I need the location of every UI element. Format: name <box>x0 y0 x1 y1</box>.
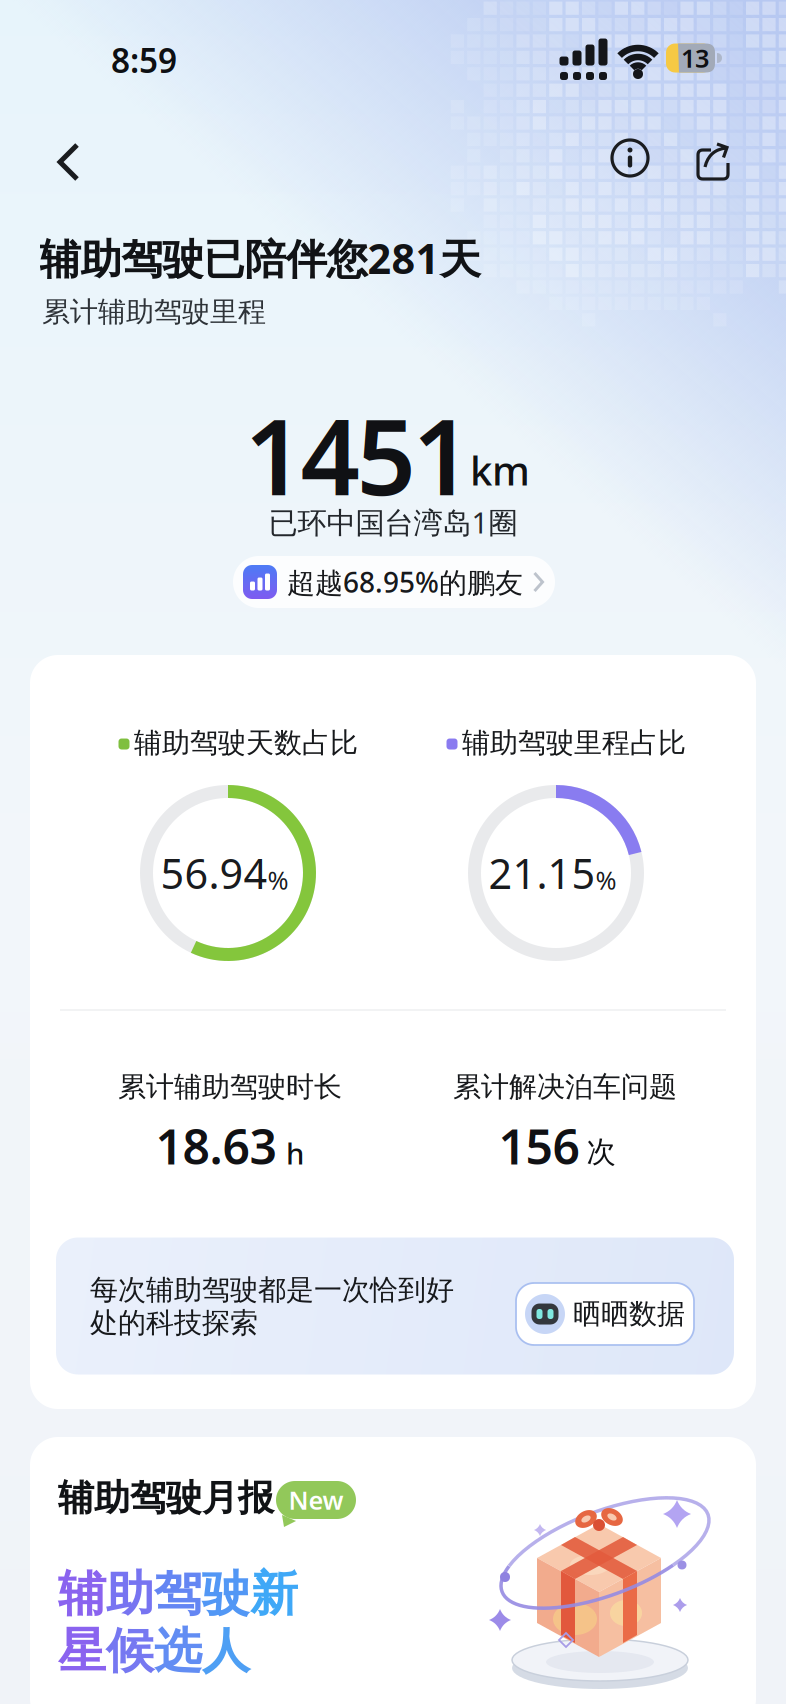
staticText: 辅助驾驶里程占比 <box>462 726 686 760</box>
staticText: 驾 <box>154 1564 202 1623</box>
staticText: 候 <box>106 1621 154 1680</box>
staticText: 21.15 <box>488 846 595 900</box>
staticText: 1451 <box>244 386 471 524</box>
staticText: 56.94 <box>160 846 267 900</box>
staticText: 助 <box>106 1564 154 1623</box>
button[interactable]: 辅助驾驶月报 <box>30 1437 756 1704</box>
button[interactable]: Share <box>691 138 735 182</box>
button[interactable]: Back <box>49 140 93 184</box>
staticText: 辅助驾驶月报 <box>58 1476 274 1520</box>
staticText: 156 <box>498 1114 579 1178</box>
staticText: 晒晒数据 <box>573 1297 685 1331</box>
staticText: h <box>286 1133 304 1172</box>
staticText: 每次辅助驾驶都是一次恰到好 <box>90 1273 454 1307</box>
staticText: 8:59 <box>111 38 177 82</box>
staticText: New <box>288 1483 343 1517</box>
staticText: km <box>470 443 530 496</box>
button[interactable]: Info <box>608 136 652 180</box>
staticText: 星 <box>58 1621 106 1680</box>
staticText: % <box>267 863 288 897</box>
staticText: 13 <box>681 41 709 75</box>
staticText: % <box>595 863 616 897</box>
staticText: 驶 <box>202 1564 250 1623</box>
staticText: 辅助驾驶天数占比 <box>134 726 358 760</box>
button[interactable]: 超越68.95%的鹏友 <box>233 556 555 608</box>
staticText: 已环中国台湾岛1圈 <box>268 502 517 541</box>
staticText: 累计解决泊车问题 <box>453 1070 677 1104</box>
staticText: 处的科技探索 <box>90 1306 258 1340</box>
staticText: 超越68.95%的鹏友 <box>287 563 523 601</box>
staticText: 次 <box>586 1134 615 1170</box>
staticText: 18.63 <box>155 1114 276 1178</box>
staticText: 人 <box>202 1621 250 1680</box>
button[interactable]: 晒晒数据 <box>516 1283 694 1345</box>
staticText: 新 <box>250 1564 298 1623</box>
staticText: 辅 <box>58 1564 106 1623</box>
staticText: 累计辅助驾驶里程 <box>42 295 266 329</box>
staticText: 辅助驾驶已陪伴您281天 <box>39 231 480 285</box>
staticText: 累计辅助驾驶时长 <box>118 1070 342 1104</box>
staticText: 选 <box>154 1621 202 1680</box>
